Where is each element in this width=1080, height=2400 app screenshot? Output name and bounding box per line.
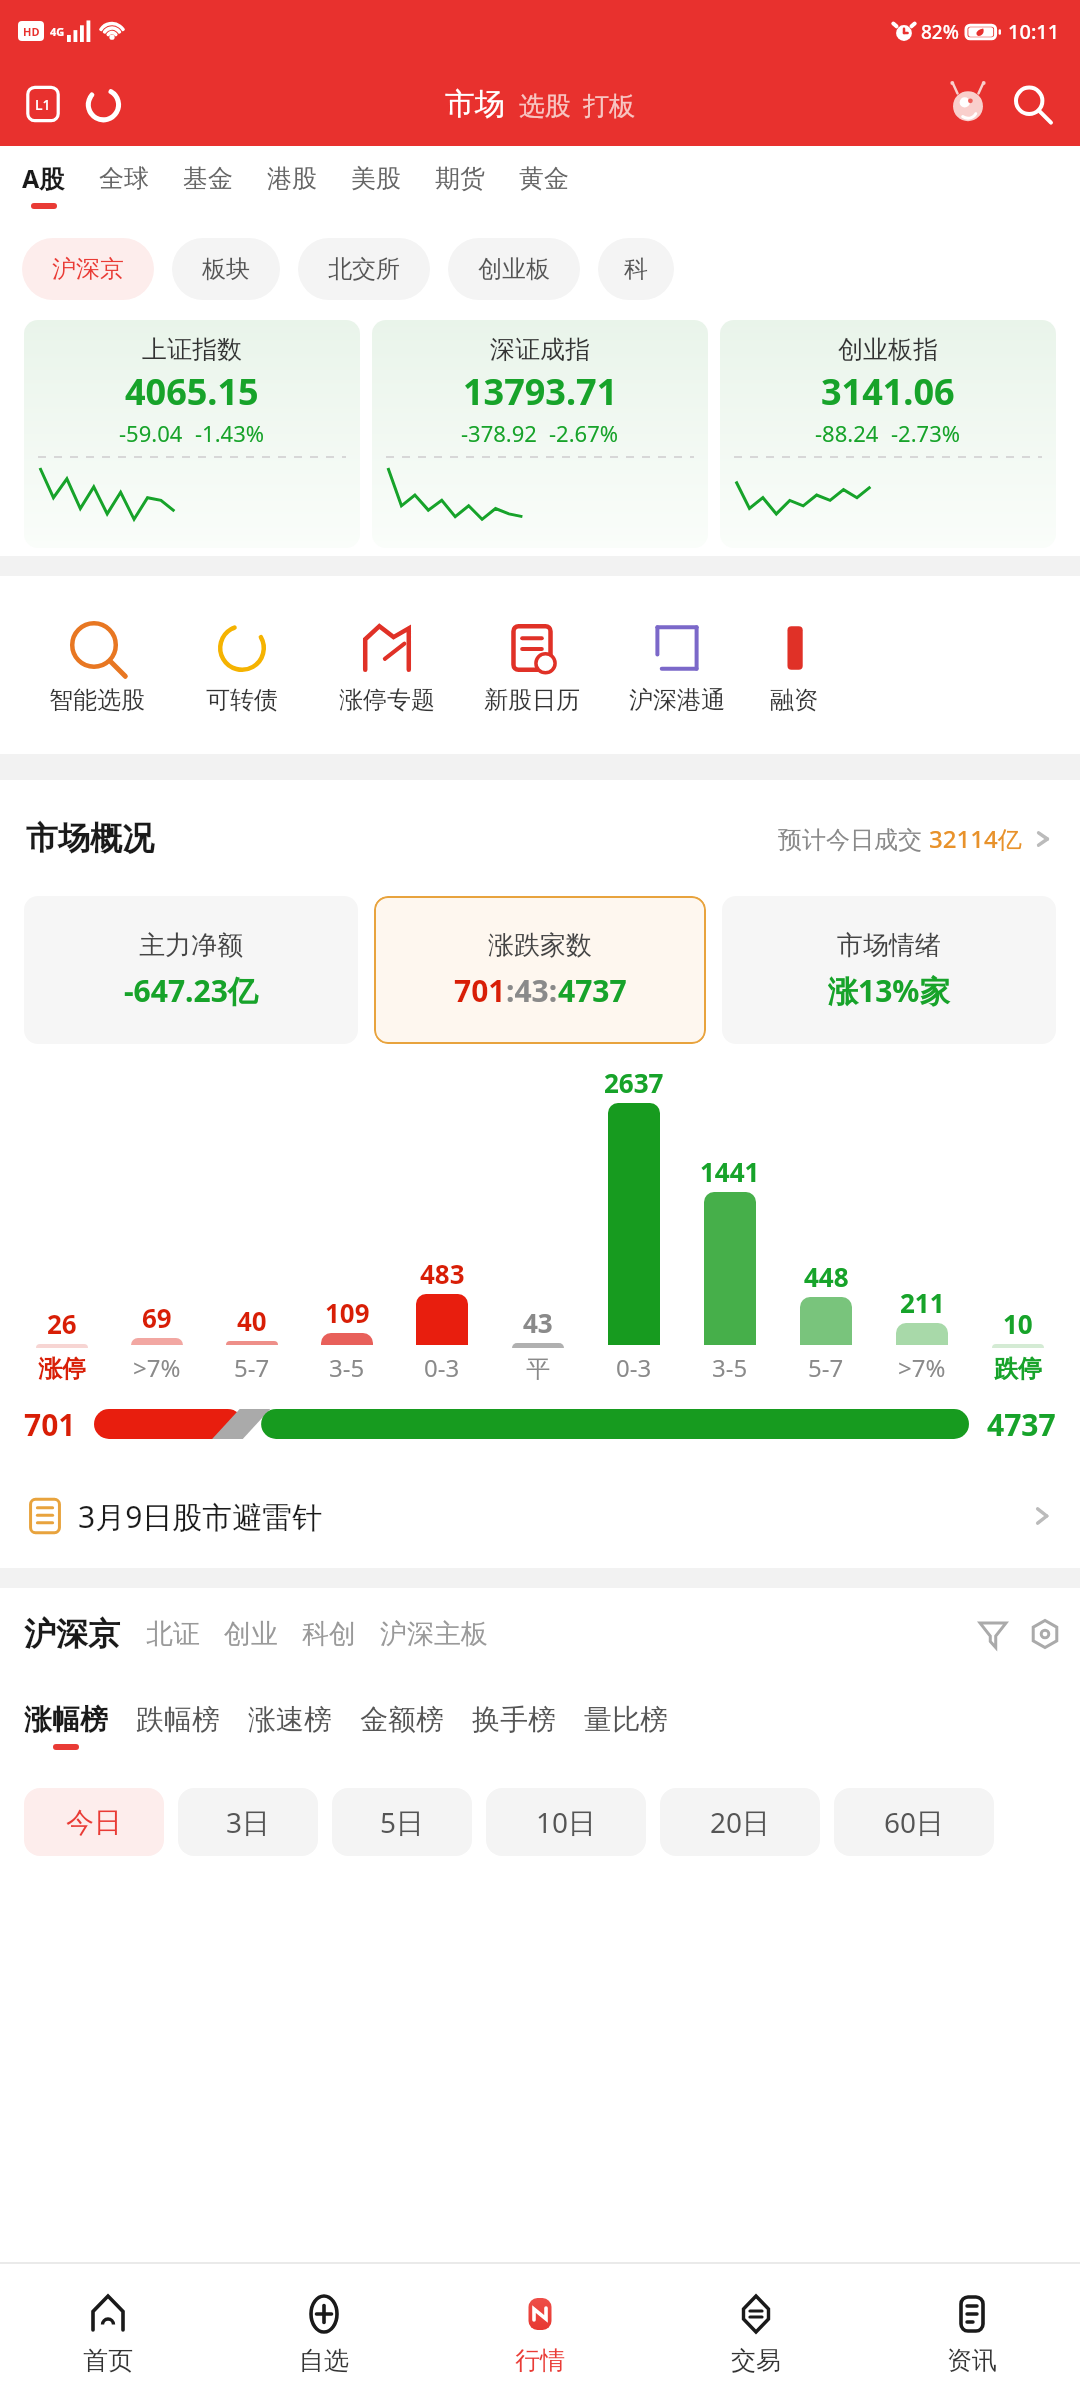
staticText: HD: [23, 24, 40, 39]
staticText: 上证指数: [142, 334, 242, 365]
button[interactable]: 科创: [302, 1617, 356, 1651]
staticText: 智能选股: [49, 685, 145, 715]
button[interactable]: 20日: [660, 1788, 820, 1856]
staticText: 3月9日股市避雷针: [78, 1496, 323, 1537]
staticText: 60日: [884, 1803, 945, 1841]
staticText: 市场情绪: [837, 929, 941, 962]
staticText: 701: [454, 970, 506, 1011]
staticText: 沪深京: [52, 254, 124, 284]
staticText: 涨13%家: [828, 970, 950, 1011]
staticText: 平: [526, 1354, 550, 1384]
button[interactable]: 期货: [435, 146, 485, 224]
staticText: -88.24: [815, 418, 879, 448]
button[interactable]: 沪深京: [22, 238, 154, 300]
button[interactable]: 创业板指: [720, 320, 1056, 548]
staticText: >7%: [898, 1351, 946, 1384]
button[interactable]: 10日: [486, 1788, 646, 1856]
button[interactable]: 北交所: [298, 238, 430, 300]
button[interactable]: Level 1: [22, 83, 64, 125]
button[interactable]: 60日: [834, 1788, 994, 1856]
button[interactable]: 智能选股: [24, 615, 169, 715]
button[interactable]: 涨跌家数: [374, 896, 706, 1044]
button[interactable]: 融资: [749, 615, 839, 715]
staticText: 跌幅榜: [136, 1702, 220, 1737]
button[interactable]: 北证: [146, 1617, 200, 1651]
button[interactable]: 5日: [332, 1788, 472, 1856]
button[interactable]: A股: [22, 146, 65, 224]
button[interactable]: 板块: [172, 238, 280, 300]
staticText: 科: [624, 254, 648, 284]
staticText: 市场概况: [26, 818, 154, 858]
staticText: 基金: [183, 163, 233, 194]
staticText: 5-7: [234, 1351, 270, 1384]
button[interactable]: 跌幅榜: [136, 1702, 220, 1750]
button[interactable]: 新股日历: [459, 615, 604, 715]
staticText: 创业板指: [838, 334, 938, 365]
button[interactable]: 主力净额: [24, 896, 358, 1044]
button[interactable]: 创业板: [448, 238, 580, 300]
button[interactable]: 港股: [267, 146, 317, 224]
staticText: 4737: [558, 970, 627, 1011]
staticText: 北交所: [328, 254, 400, 284]
button[interactable]: 全球: [99, 146, 149, 224]
staticText: 融资: [770, 685, 818, 715]
staticText: >7%: [133, 1351, 181, 1384]
button[interactable]: 黄金: [519, 146, 569, 224]
staticText: 创业板: [478, 254, 550, 284]
button[interactable]: 3日: [178, 1788, 318, 1856]
staticText: 20日: [710, 1803, 771, 1841]
staticText: 资讯: [947, 2345, 997, 2376]
staticText: 选股: [519, 90, 571, 123]
button[interactable]: 市场情绪: [722, 896, 1056, 1044]
button[interactable]: 可转债: [169, 615, 314, 715]
button[interactable]: Assistant: [942, 78, 994, 130]
staticText: 市场: [445, 85, 505, 123]
button[interactable]: 量比榜: [584, 1702, 668, 1750]
button[interactable]: 沪深港通: [604, 615, 749, 715]
staticText: 4737: [987, 1404, 1056, 1445]
staticText: -2.67%: [549, 418, 619, 448]
button[interactable]: 3月9日股市避雷针: [0, 1464, 1080, 1568]
button[interactable]: 换手榜: [472, 1702, 556, 1750]
staticText: 新股日历: [484, 685, 580, 715]
button[interactable]: 首页: [0, 2264, 216, 2400]
staticText: 金额榜: [360, 1702, 444, 1737]
button[interactable]: Search: [1006, 78, 1058, 130]
button[interactable]: 涨幅榜: [24, 1702, 108, 1750]
staticText: 首页: [83, 2345, 133, 2376]
button[interactable]: Night mode: [80, 82, 124, 126]
button[interactable]: 资讯: [864, 2264, 1080, 2400]
button[interactable]: 行情: [432, 2264, 648, 2400]
button[interactable]: 预计今日成交: [778, 822, 1054, 855]
staticText: 10:11: [1008, 18, 1060, 45]
button[interactable]: 涨速榜: [248, 1702, 332, 1750]
staticText: -2.73%: [891, 418, 961, 448]
button[interactable]: 美股: [351, 146, 401, 224]
staticText: L1: [35, 95, 51, 114]
staticText: 43: [523, 1305, 553, 1340]
staticText: 北证: [146, 1617, 200, 1651]
staticText: 跌停: [994, 1354, 1042, 1384]
button[interactable]: 创业: [224, 1617, 278, 1651]
button[interactable]: 深证成指: [372, 320, 708, 548]
button[interactable]: 交易: [648, 2264, 864, 2400]
staticText: 10日: [536, 1803, 597, 1841]
staticText: 涨停专题: [339, 685, 435, 715]
staticText: 期货: [435, 163, 485, 194]
button[interactable]: 科: [598, 238, 674, 300]
staticText: 科创: [302, 1617, 356, 1651]
staticText: 美股: [351, 163, 401, 194]
button[interactable]: 沪深主板: [380, 1617, 488, 1651]
button[interactable]: Settings: [1022, 1611, 1068, 1657]
button[interactable]: 今日: [24, 1788, 164, 1856]
button[interactable]: 自选: [216, 2264, 432, 2400]
button[interactable]: 基金: [183, 146, 233, 224]
staticText: 涨速榜: [248, 1702, 332, 1737]
button[interactable]: 金额榜: [360, 1702, 444, 1750]
staticText: 打板: [583, 90, 635, 123]
button[interactable]: 上证指数: [24, 320, 360, 548]
staticText: 换手榜: [472, 1702, 556, 1737]
button[interactable]: 涨停专题: [314, 615, 459, 715]
staticText: 涨跌家数: [488, 929, 592, 962]
button[interactable]: Filter: [970, 1611, 1016, 1657]
